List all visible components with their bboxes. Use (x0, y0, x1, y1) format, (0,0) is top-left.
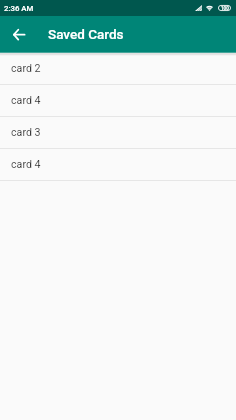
staticText: Saved Cards (48, 26, 124, 42)
button[interactable]: card 2 (0, 52, 236, 84)
button[interactable]: card 4 (0, 148, 236, 180)
button[interactable]: Navigate up (7, 22, 31, 46)
button[interactable]: card 4 (0, 84, 236, 116)
staticText: card 4 (11, 158, 41, 171)
button[interactable]: card 3 (0, 116, 236, 148)
staticText: 2:36 AM (4, 4, 34, 13)
staticText: card 2 (11, 62, 41, 75)
staticText: 100 (221, 6, 229, 11)
staticText: card 4 (11, 94, 41, 107)
staticText: card 3 (11, 126, 41, 139)
